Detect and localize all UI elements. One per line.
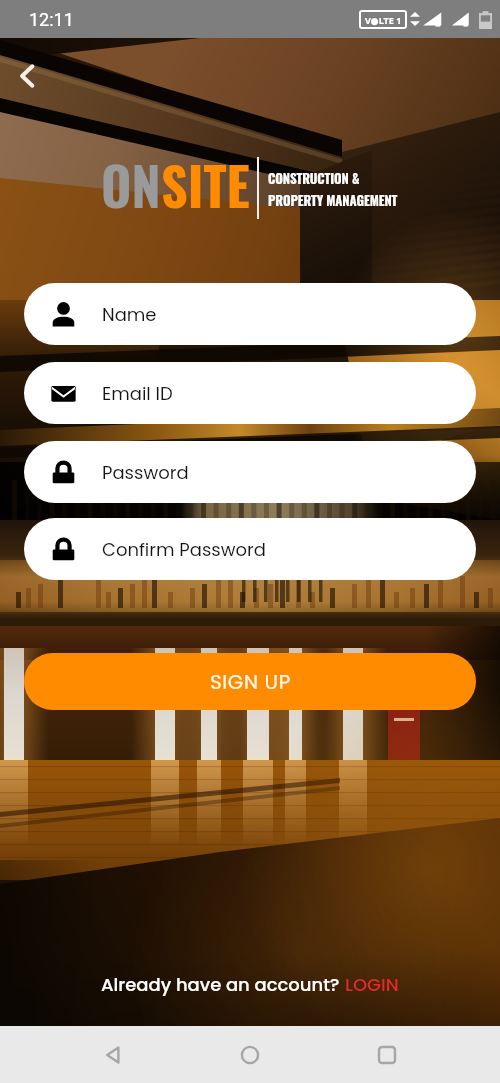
staticText: Already have an account? — [101, 972, 345, 997]
button[interactable]: Name — [24, 283, 476, 345]
staticText: SITE — [161, 146, 250, 223]
staticText: Email ID — [102, 381, 173, 406]
button[interactable]: Back — [89, 1031, 137, 1079]
button[interactable]: Recents — [363, 1031, 411, 1079]
staticText: PROPERTY MANAGEMENT — [268, 190, 398, 209]
staticText: Password — [102, 460, 189, 485]
button[interactable]: Home — [226, 1031, 274, 1079]
button[interactable]: Password — [24, 441, 476, 503]
button[interactable]: SIGN UP — [24, 653, 476, 710]
staticText: Confirm Password — [102, 537, 266, 562]
button[interactable]: Already have an account? — [101, 972, 399, 997]
staticText: SIGN UP — [210, 668, 291, 696]
staticText: CONSTRUCTION & — [268, 168, 360, 187]
button[interactable]: Confirm Password — [24, 518, 476, 580]
staticText: LOGIN — [345, 972, 399, 997]
staticText: 12:11 — [29, 9, 74, 30]
button[interactable]: Back — [4, 52, 52, 100]
staticText: Name — [102, 302, 157, 327]
button[interactable]: Email ID — [24, 362, 476, 424]
staticText: ON — [101, 146, 161, 223]
staticText: V●LTE 1 — [365, 14, 402, 26]
